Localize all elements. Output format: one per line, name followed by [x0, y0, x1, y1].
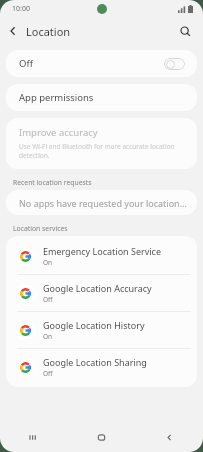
staticText: Improve accuracy — [19, 126, 98, 139]
button[interactable]: Home — [67, 422, 135, 452]
staticText: On — [43, 332, 53, 341]
button[interactable]: Search — [173, 19, 197, 43]
button[interactable]: Google Location History — [6, 312, 197, 348]
staticText: 10:00 — [12, 4, 30, 14]
button[interactable]: Back — [135, 422, 203, 452]
button[interactable]: App permissions — [6, 84, 197, 111]
button[interactable]: Improve accuracy — [6, 118, 197, 169]
staticText: Off — [19, 57, 33, 70]
button[interactable]: Off — [6, 50, 197, 77]
staticText: Google Location Accuracy — [43, 282, 152, 294]
staticText: Use Wi-Fi and Bluetooth for more accurat… — [19, 142, 184, 160]
button[interactable]: Emergency Location Service — [6, 238, 197, 274]
button[interactable]: Google Location Accuracy — [6, 275, 197, 311]
button[interactable]: Google Location Sharing — [6, 349, 197, 385]
staticText: Google Location Sharing — [43, 356, 147, 368]
button[interactable]: Back — [0, 18, 26, 44]
staticText: Off — [43, 369, 53, 378]
staticText: App permissions — [19, 91, 94, 104]
staticText: On — [43, 258, 53, 267]
staticText: Emergency Location Service — [43, 245, 162, 257]
staticText: Google Location History — [43, 319, 145, 331]
staticText: Location — [26, 24, 71, 39]
button[interactable]: Recent apps — [0, 422, 67, 452]
staticText: Location services — [13, 224, 68, 233]
staticText: No apps have requested your location r.. — [19, 197, 189, 209]
staticText: Recent location requests — [13, 178, 92, 187]
staticText: Off — [43, 295, 53, 304]
